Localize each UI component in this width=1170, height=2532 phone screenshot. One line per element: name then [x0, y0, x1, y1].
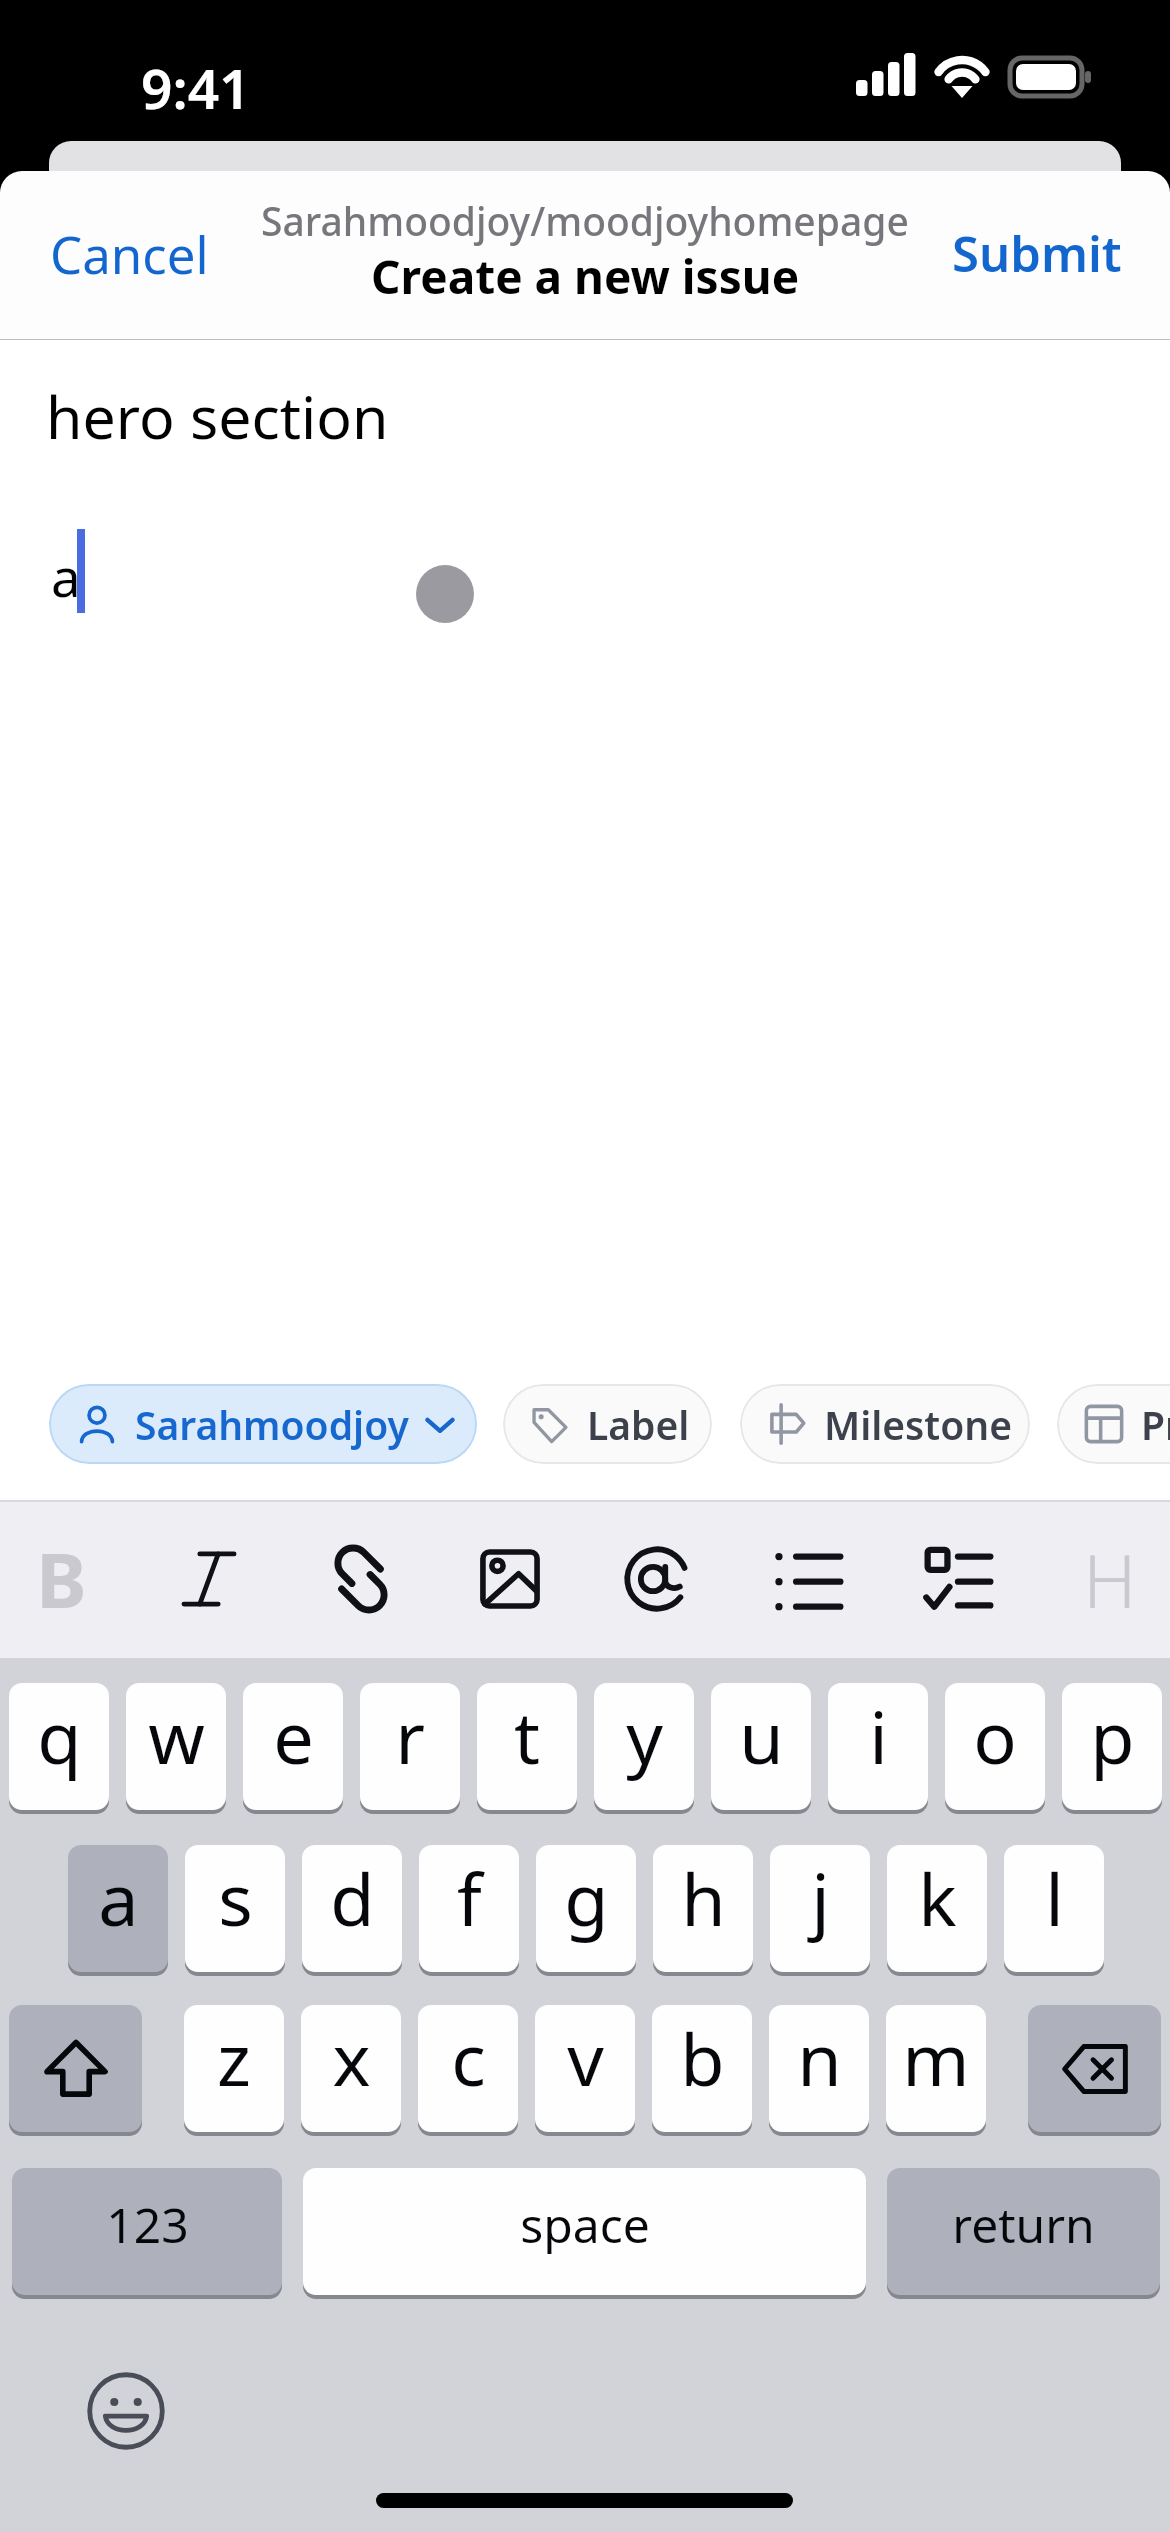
button[interactable]: Heading: [1054, 1523, 1166, 1635]
button[interactable]: Link: [305, 1523, 417, 1635]
staticText: c: [451, 2009, 486, 2107]
staticText: j: [811, 1849, 830, 1947]
button[interactable]: Italic: [153, 1523, 265, 1635]
button[interactable]: y: [594, 1683, 694, 1810]
staticText: w: [148, 1687, 205, 1785]
button[interactable]: z: [184, 2005, 284, 2132]
staticText: h: [681, 1849, 726, 1947]
staticText: Project: [1141, 1398, 1170, 1451]
staticText: g: [564, 1849, 609, 1947]
staticText: Milestone: [824, 1398, 1012, 1451]
staticText: o: [973, 1687, 1017, 1785]
button[interactable]: o: [945, 1683, 1045, 1810]
staticText: u: [739, 1687, 784, 1785]
button[interactable]: s: [185, 1845, 285, 1972]
staticText: hero section: [46, 376, 389, 456]
button[interactable]: Backspace: [1028, 2005, 1161, 2132]
staticText: s: [218, 1849, 253, 1947]
button[interactable]: t: [477, 1683, 577, 1810]
staticText: return: [952, 2192, 1095, 2257]
button[interactable]: q: [9, 1683, 109, 1810]
button[interactable]: w: [126, 1683, 226, 1810]
button[interactable]: u: [711, 1683, 811, 1810]
button[interactable]: h: [653, 1845, 753, 1972]
button[interactable]: Emoji keyboard: [87, 2372, 165, 2450]
staticText: d: [330, 1849, 375, 1947]
staticText: a: [51, 540, 81, 612]
staticText: v: [567, 2009, 604, 2107]
staticText: e: [273, 1687, 314, 1785]
button[interactable]: Issue body editor: [0, 340, 1170, 1384]
staticText: H: [1083, 1529, 1137, 1630]
staticText: m: [902, 2009, 970, 2107]
staticText: Submit: [952, 220, 1122, 287]
staticText: k: [918, 1849, 957, 1947]
button[interactable]: j: [770, 1845, 870, 1972]
button[interactable]: Bold: [5, 1523, 117, 1635]
button[interactable]: i: [828, 1683, 928, 1810]
button[interactable]: d: [302, 1845, 402, 1972]
button[interactable]: space: [303, 2168, 866, 2295]
button[interactable]: f: [419, 1845, 519, 1972]
staticText: Sarahmoodjoy: [135, 1398, 409, 1451]
staticText: 9:41: [141, 50, 251, 125]
button[interactable]: Project: [1057, 1384, 1170, 1464]
button[interactable]: x: [301, 2005, 401, 2132]
staticText: B: [36, 1527, 87, 1631]
staticText: f: [457, 1849, 482, 1947]
staticText: i: [869, 1687, 888, 1785]
staticText: Sarahmoodjoy/moodjoyhomepage: [261, 194, 909, 247]
staticText: r: [395, 1687, 425, 1785]
staticText: space: [520, 2192, 650, 2257]
staticText: p: [1090, 1687, 1135, 1785]
staticText: y: [626, 1687, 663, 1785]
button[interactable]: e: [243, 1683, 343, 1810]
staticText: z: [217, 2009, 251, 2107]
button[interactable]: 123: [12, 2168, 282, 2295]
button[interactable]: Bulleted list: [752, 1523, 864, 1635]
button[interactable]: p: [1062, 1683, 1162, 1810]
staticText: t: [514, 1687, 540, 1785]
button[interactable]: return: [887, 2168, 1160, 2295]
button[interactable]: Mention: [601, 1523, 713, 1635]
staticText: b: [680, 2009, 725, 2107]
button[interactable]: b: [652, 2005, 752, 2132]
button[interactable]: r: [360, 1683, 460, 1810]
staticText: Cancel: [50, 219, 209, 288]
button[interactable]: a: [68, 1845, 168, 1972]
button[interactable]: l: [1004, 1845, 1104, 1972]
button[interactable]: c: [418, 2005, 518, 2132]
button[interactable]: Task list: [902, 1523, 1014, 1635]
staticText: 123: [106, 2192, 189, 2257]
button[interactable]: n: [769, 2005, 869, 2132]
button[interactable]: Cancel: [18, 201, 241, 306]
staticText: Create a new issue: [371, 245, 800, 308]
button[interactable]: m: [886, 2005, 986, 2132]
button[interactable]: Shift: [9, 2005, 142, 2132]
button[interactable]: v: [535, 2005, 635, 2132]
button[interactable]: Sarahmoodjoy: [49, 1384, 477, 1464]
staticText: q: [37, 1687, 82, 1785]
button[interactable]: g: [536, 1845, 636, 1972]
staticText: a: [98, 1849, 139, 1947]
button[interactable]: Image: [454, 1523, 566, 1635]
staticText: Label: [587, 1398, 690, 1451]
staticText: n: [797, 2009, 842, 2107]
button[interactable]: k: [887, 1845, 987, 1972]
button[interactable]: Label: [503, 1384, 712, 1464]
staticText: x: [332, 2009, 371, 2107]
staticText: l: [1045, 1849, 1064, 1947]
button[interactable]: Milestone: [740, 1384, 1030, 1464]
button[interactable]: Submit: [920, 202, 1154, 305]
